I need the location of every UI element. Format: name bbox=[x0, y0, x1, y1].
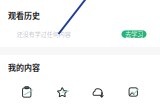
staticText: 还没有学过任何内容 bbox=[17, 29, 71, 38]
button[interactable]: 下载 bbox=[80, 85, 115, 99]
staticText: 我的内容 bbox=[8, 61, 40, 73]
staticText: 去学习 bbox=[125, 30, 143, 39]
button[interactable]: 相册 bbox=[115, 85, 151, 99]
staticText: 观看历史 bbox=[8, 9, 40, 21]
button[interactable]: 笔记 bbox=[9, 85, 44, 99]
button[interactable]: 收藏 bbox=[44, 85, 80, 99]
button[interactable]: 去学习 bbox=[121, 30, 146, 38]
